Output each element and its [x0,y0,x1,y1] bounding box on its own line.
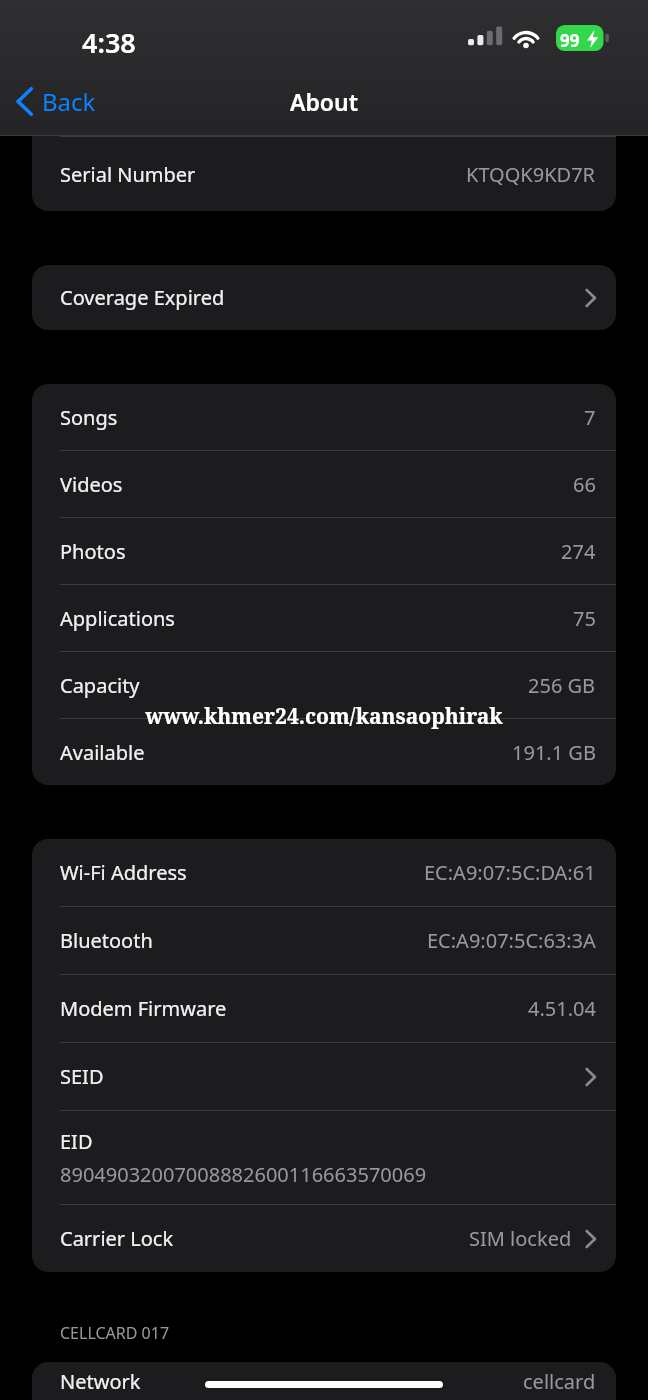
staticText: 75 [573,605,596,632]
staticText: 7 [584,404,596,431]
button[interactable]: SEID [32,1043,616,1110]
button[interactable]: Coverage Expired [32,265,616,330]
staticText: Photos [60,538,126,565]
staticText: Coverage Expired [60,284,225,311]
button[interactable]: Serial Number [32,137,616,211]
staticText: SIM locked [469,1225,572,1252]
staticText: 4:38 [82,24,136,61]
staticText: 274 [561,538,596,565]
staticText: Modem Firmware [60,995,227,1022]
button[interactable]: Modem Firmware [32,975,616,1042]
staticText: Network [60,1368,141,1395]
staticText: Carrier Lock [60,1225,174,1252]
button[interactable]: Network [32,1362,616,1400]
button[interactable]: Wi-Fi Address [32,839,616,906]
button[interactable]: Bluetooth [32,907,616,974]
staticText: EC:A9:07:5C:63:3A [427,927,596,954]
button[interactable]: Carrier Lock [32,1205,616,1272]
staticText: 66 [573,471,596,498]
button[interactable]: Applications [32,585,616,651]
button[interactable]: Back [0,79,110,124]
staticText: Bluetooth [60,927,153,954]
staticText: EC:A9:07:5C:DA:61 [424,859,596,886]
staticText: 191.1 GB [512,739,596,766]
button[interactable]: Songs [32,384,616,450]
staticText: 256 GB [528,672,596,699]
staticText: Capacity [60,672,140,699]
staticText: Wi-Fi Address [60,859,187,886]
other: Home indicator [205,1381,443,1388]
staticText: EID [60,1128,93,1155]
staticText: www.khmer24.com/kansaophirak [0,702,648,731]
button[interactable]: Videos [32,451,616,517]
staticText: cellcard [523,1368,596,1395]
button[interactable]: EID [32,1111,616,1204]
staticText: Back [42,85,96,118]
staticText: Videos [60,471,123,498]
staticText: 89049032007008882600116663570069 [60,1161,427,1188]
staticText: 4.51.04 [528,995,596,1022]
staticText: Songs [60,404,118,431]
staticText: CELLCARD 017 [60,1322,170,1344]
staticText: Applications [60,605,175,632]
button[interactable]: Photos [32,518,616,584]
button[interactable]: Available [32,719,616,785]
staticText: Serial Number [60,161,196,188]
button[interactable]: Capacity [32,652,616,718]
staticText: 99 [560,29,580,52]
staticText: KTQQK9KD7R [466,161,596,188]
staticText: SEID [60,1063,104,1090]
staticText: About [290,86,359,117]
staticText: Available [60,739,145,766]
